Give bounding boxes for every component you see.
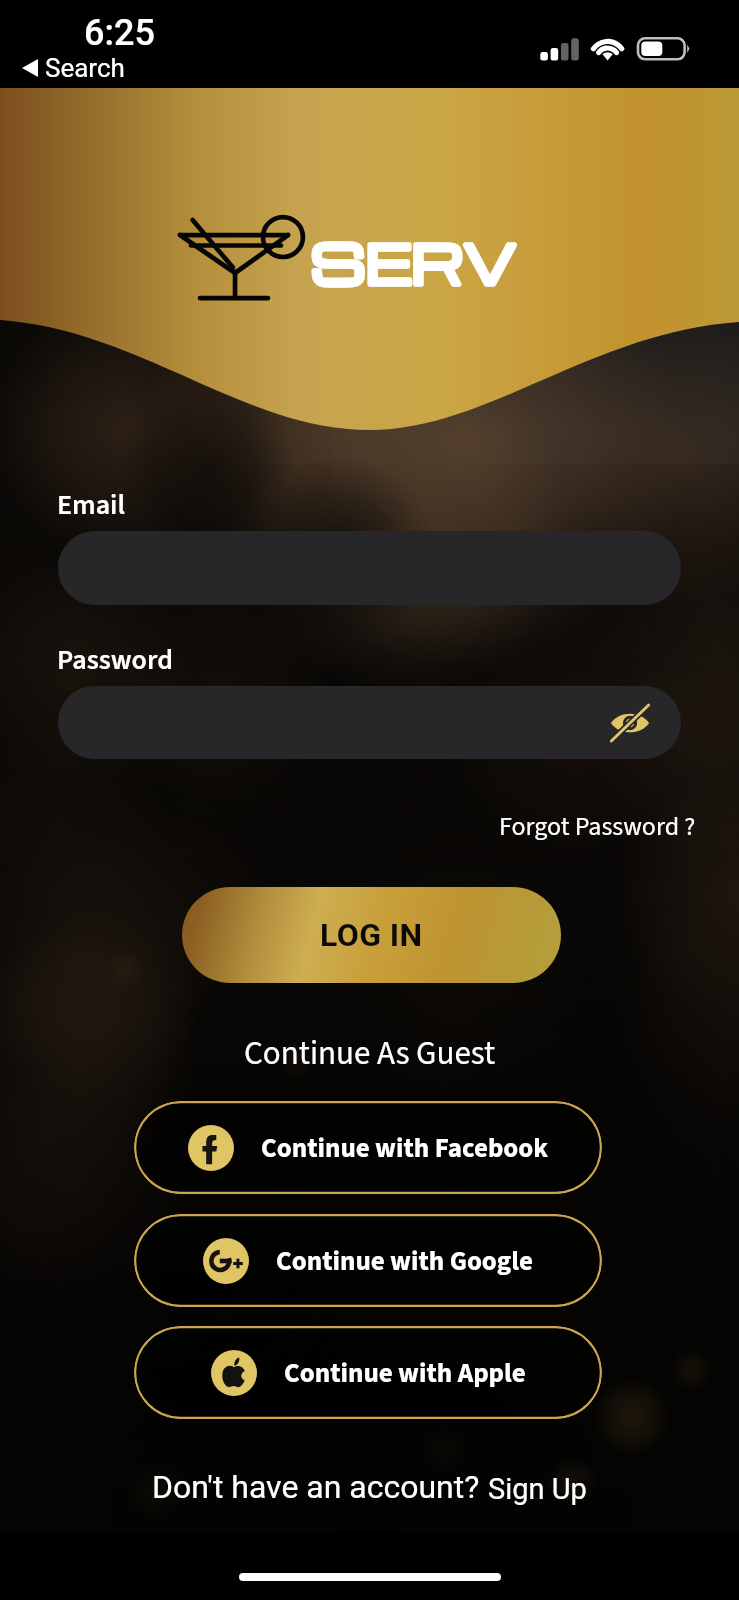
button[interactable]: Password input — [58, 686, 681, 759]
staticText: Continue As Guest — [244, 1030, 496, 1077]
staticText: 6:25 — [84, 12, 155, 54]
button[interactable]: Continue As Guest — [244, 1030, 496, 1077]
staticText: SERV — [311, 224, 516, 298]
button[interactable]: Continue with Google — [134, 1214, 602, 1307]
staticText: Forgot Password ? — [499, 808, 696, 845]
button[interactable]: Email input — [58, 531, 681, 605]
button[interactable]: LOG IN — [182, 887, 561, 983]
staticText: SERV — [311, 224, 516, 298]
staticText: Don't have an account? — [152, 1468, 488, 1506]
staticText: Continue with Google — [276, 1242, 533, 1280]
button[interactable]: Sign Up — [488, 1472, 587, 1506]
staticText: Password — [57, 640, 173, 680]
button[interactable]: Forgot Password ? — [499, 808, 696, 845]
staticText: Continue with Apple — [284, 1354, 526, 1392]
button[interactable]: Continue with Facebook — [134, 1101, 602, 1194]
staticText: Search — [45, 53, 125, 83]
staticText: Continue with Facebook — [261, 1129, 549, 1167]
staticText: LOG IN — [320, 916, 423, 954]
staticText: Sign Up — [488, 1472, 587, 1506]
button[interactable]: Continue with Apple — [134, 1326, 602, 1419]
staticText: Email — [57, 485, 126, 525]
button[interactable]: Show password — [600, 693, 660, 753]
